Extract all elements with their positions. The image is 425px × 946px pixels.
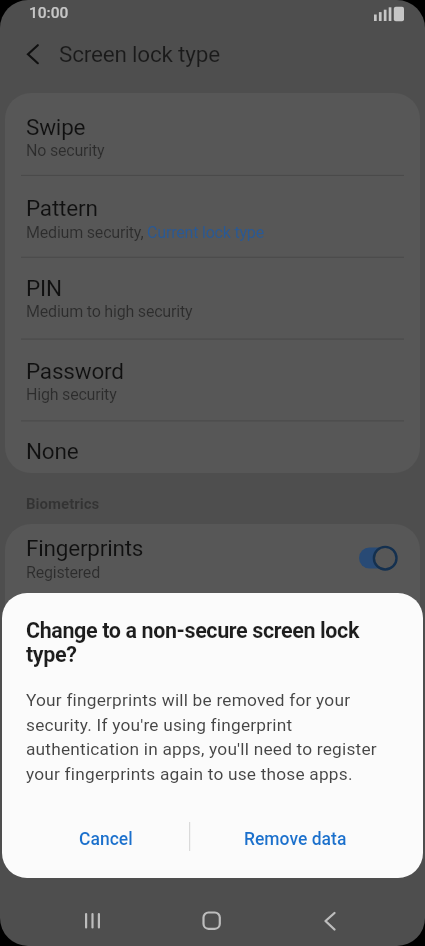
staticText: Password (26, 358, 124, 384)
button[interactable] (5, 421, 420, 473)
staticText: High security (26, 385, 117, 404)
staticText: Biometrics (26, 495, 100, 513)
staticText: Fingerprints (26, 535, 144, 561)
button[interactable] (5, 93, 420, 175)
button[interactable] (5, 339, 420, 421)
button[interactable] (5, 257, 420, 339)
staticText: Remove data (244, 829, 347, 850)
button[interactable] (352, 541, 404, 575)
staticText: Screen lock type (59, 41, 220, 67)
staticText: type? (26, 642, 77, 667)
staticText: 10:00 (29, 4, 69, 22)
staticText: Your fingerprints will be removed for yo… (26, 690, 351, 710)
button[interactable] (5, 524, 420, 634)
staticText: Pattern (26, 195, 98, 221)
staticText: Registered (26, 563, 100, 582)
staticText: security. If you're using fingerprint (26, 715, 293, 735)
staticText: Change to a non-secure screen lock (26, 618, 359, 643)
staticText: Swipe (26, 114, 86, 140)
staticText: Medium to high security (26, 302, 193, 321)
staticText: Medium security, Current lock type (26, 223, 264, 242)
button[interactable]: Remove data (230, 818, 361, 860)
staticText: Cancel (79, 829, 133, 850)
staticText: PIN (26, 275, 62, 301)
staticText: None (26, 438, 79, 464)
staticText: your fingerprints again to use those app… (26, 764, 353, 784)
button[interactable] (72, 899, 112, 943)
button[interactable] (310, 899, 350, 943)
button[interactable] (5, 175, 420, 257)
button[interactable]: Cancel (41, 818, 171, 860)
button[interactable] (191, 899, 231, 943)
staticText: authentication in apps, you'll need to r… (26, 739, 377, 759)
button[interactable] (14, 38, 50, 70)
staticText: No security (26, 141, 105, 160)
